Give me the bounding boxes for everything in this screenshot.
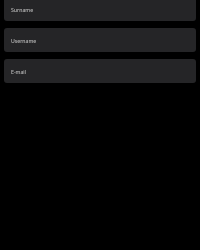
staticText: Surname: [11, 6, 34, 13]
button[interactable]: E-mail: [4, 59, 196, 83]
button[interactable]: Username: [4, 28, 196, 52]
staticText: Username: [11, 37, 37, 44]
button[interactable]: Surname: [4, 0, 196, 21]
staticText: E-mail: [11, 68, 26, 75]
